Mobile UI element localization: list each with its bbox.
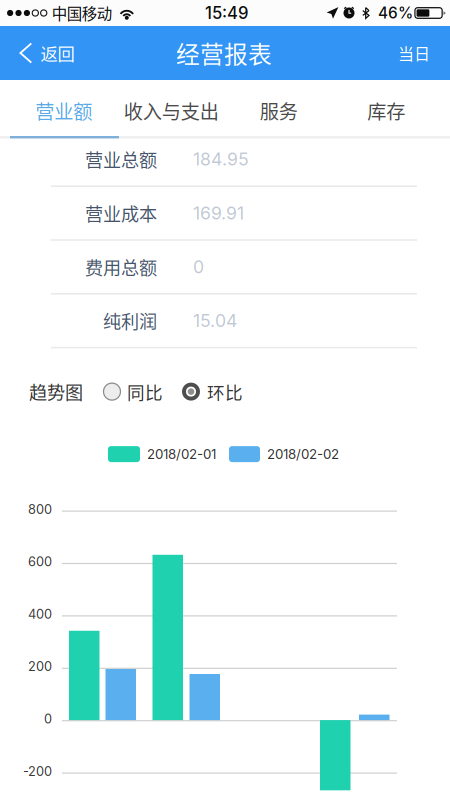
staticText: 2018/02-01 [147,446,216,462]
staticText: 0 [193,256,204,278]
staticText: 返回 [40,40,74,66]
button[interactable]: 服务 [225,89,332,133]
staticText: 库存 [367,97,405,125]
staticText: 2018/02-02 [267,446,339,462]
staticText: 600 [28,554,52,569]
staticText: 服务 [260,97,298,125]
staticText: 当日 [398,41,430,65]
staticText: 收入与支出 [124,97,219,125]
staticText: 46% [378,4,413,22]
staticText: 经营报表 [176,36,272,70]
button[interactable]: 库存 [332,89,440,133]
staticText: 800 [28,501,52,517]
staticText: 营业额 [35,97,92,125]
button[interactable]: 营业额 [10,89,117,133]
staticText: 400 [28,606,52,622]
button[interactable]: 同比 [83,379,163,404]
button[interactable]: 收入与支出 [117,89,225,133]
staticText: 169.91 [193,202,244,224]
staticText: 营业成本 [85,200,157,226]
staticText: 200 [28,659,52,674]
staticText: -200 [23,763,52,779]
staticText: 15.04 [193,310,237,331]
staticText: 中国移动 [52,2,112,24]
button[interactable]: 环比 [163,379,243,404]
staticText: 营业总额 [85,146,157,172]
staticText: 趋势图 [29,378,83,405]
staticText: 184.95 [193,148,249,170]
button[interactable]: 当日 [384,26,450,80]
button[interactable]: 返回 [0,26,86,80]
staticText: 环比 [207,379,243,404]
staticText: 0 [44,711,52,727]
staticText: 15:49 [205,3,248,23]
staticText: 同比 [127,379,163,404]
staticText: 费用总额 [85,254,157,280]
staticText: 纯利润 [103,308,157,334]
